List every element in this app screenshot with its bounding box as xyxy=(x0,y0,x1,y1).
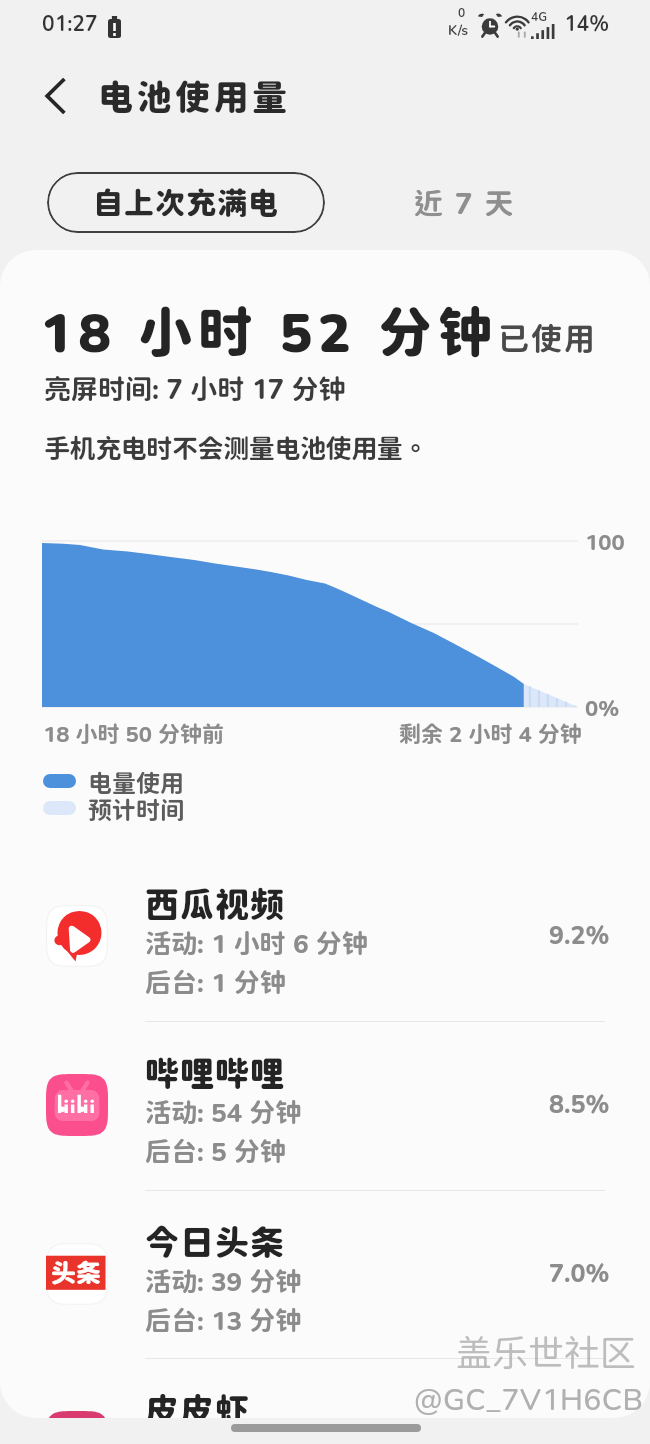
button[interactable]: 头条 xyxy=(0,1203,650,1359)
staticText: 活动: 54 分钟 xyxy=(145,1097,302,1128)
button[interactable]: 自上次充满电 xyxy=(47,172,325,233)
staticText: 剩余 2 小时 4 分钟 xyxy=(399,721,582,747)
staticText: 7.0% xyxy=(549,1258,610,1288)
button[interactable]: 哔哩哔哩 xyxy=(0,1034,650,1190)
staticText: 8.5% xyxy=(549,1089,610,1119)
staticText: 4G xyxy=(531,9,548,23)
staticText: 皮皮虾 xyxy=(145,1390,250,1418)
staticText: 0% xyxy=(585,695,620,721)
staticText: 后台: 5 分钟 xyxy=(145,1136,286,1167)
staticText: 电量使用 xyxy=(88,769,184,797)
staticText: 预计时间 xyxy=(88,796,184,824)
staticText: 盖乐世社区 xyxy=(456,1331,637,1373)
staticText: 18 小时 50 分钟前 xyxy=(43,721,225,747)
staticText: 近 7 天 xyxy=(414,186,516,220)
staticText: 手机充电时不会测量电池使用量。 xyxy=(44,433,429,464)
staticText: @GC_7V1H6CB xyxy=(414,1381,644,1416)
staticText: 9.2% xyxy=(549,920,610,950)
staticText: 18 小时 52 分钟 xyxy=(40,300,498,364)
staticText: 后台: 1 分钟 xyxy=(145,967,286,998)
button[interactable]: 近 7 天 xyxy=(395,172,535,233)
staticText: 自上次充满电 xyxy=(93,185,279,220)
staticText: 活动: 39 分钟 xyxy=(145,1266,302,1297)
staticText: 已使用 xyxy=(498,320,597,357)
staticText: 14% xyxy=(564,11,610,36)
staticText: 哔哩哔哩 xyxy=(145,1053,285,1093)
staticText: 100 xyxy=(585,529,625,555)
staticText: 电池使用量 xyxy=(98,76,291,117)
staticText: 头条 xyxy=(51,1258,102,1288)
staticText: K/s xyxy=(448,21,468,38)
staticText: 西瓜视频 xyxy=(145,884,285,924)
staticText: 亮屏时间: 7 小时 17 分钟 xyxy=(44,373,346,405)
staticText: 后台: 13 分钟 xyxy=(145,1305,302,1336)
button[interactable]: Back xyxy=(31,71,81,121)
button[interactable]: 皮皮虾 xyxy=(0,1371,650,1418)
staticText: 0 xyxy=(458,5,466,19)
staticText: 今日头条 xyxy=(145,1222,285,1262)
staticText: 01:27 xyxy=(42,11,98,36)
staticText: 活动: 1 小时 6 分钟 xyxy=(145,928,368,959)
button[interactable]: 西瓜视频 xyxy=(0,865,650,1021)
